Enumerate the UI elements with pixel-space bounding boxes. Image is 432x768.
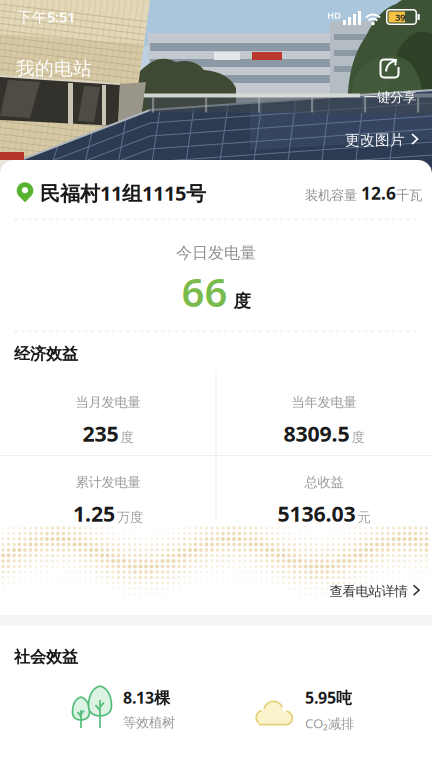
staticText: 今日发电量 xyxy=(176,243,256,263)
staticText: 度 xyxy=(351,429,364,446)
staticText: 更改图片 xyxy=(345,131,405,149)
button[interactable]: 一键分享 xyxy=(364,57,416,105)
staticText: CO₂减排 xyxy=(305,714,354,732)
staticText: 总收益 xyxy=(304,474,343,490)
button[interactable]: 更改图片 xyxy=(345,131,419,149)
staticText: 12.6 xyxy=(361,181,396,204)
staticText: 万度 xyxy=(117,509,143,526)
staticText: 66 xyxy=(181,265,227,318)
staticText: 当月发电量 xyxy=(75,394,140,410)
staticText: 235 xyxy=(82,419,118,448)
staticText: 千瓦 xyxy=(396,187,422,203)
staticText: 当年发电量 xyxy=(291,394,356,410)
staticText: 下午5:51 xyxy=(17,7,75,26)
staticText: 1.25 xyxy=(73,499,115,528)
staticText: 5.95吨 xyxy=(305,687,352,708)
staticText: 经济效益 xyxy=(14,344,78,364)
button[interactable]: 查看电站详情 xyxy=(329,583,432,599)
staticText: 累计发电量 xyxy=(75,474,140,490)
staticText: 等效植树 xyxy=(123,714,175,731)
staticText: 度 xyxy=(120,429,133,446)
staticText: 度 xyxy=(233,291,250,312)
staticText: 查看电站详情 xyxy=(329,583,407,599)
staticText: HD xyxy=(327,9,341,21)
button[interactable]: 民福村11组1115号 xyxy=(0,165,432,221)
staticText: 8.13棵 xyxy=(123,687,170,708)
staticText: 8309.5 xyxy=(283,419,349,448)
staticText: 元 xyxy=(357,509,370,526)
staticText: 39 xyxy=(395,11,405,23)
staticText: 一键分享 xyxy=(364,89,416,105)
staticText: 社会效益 xyxy=(14,647,78,667)
staticText: 民福村11组1115号 xyxy=(40,180,206,206)
staticText: 装机容量 xyxy=(305,187,361,203)
staticText: 5136.03 xyxy=(277,499,355,528)
staticText: 我的电站 xyxy=(16,57,92,80)
